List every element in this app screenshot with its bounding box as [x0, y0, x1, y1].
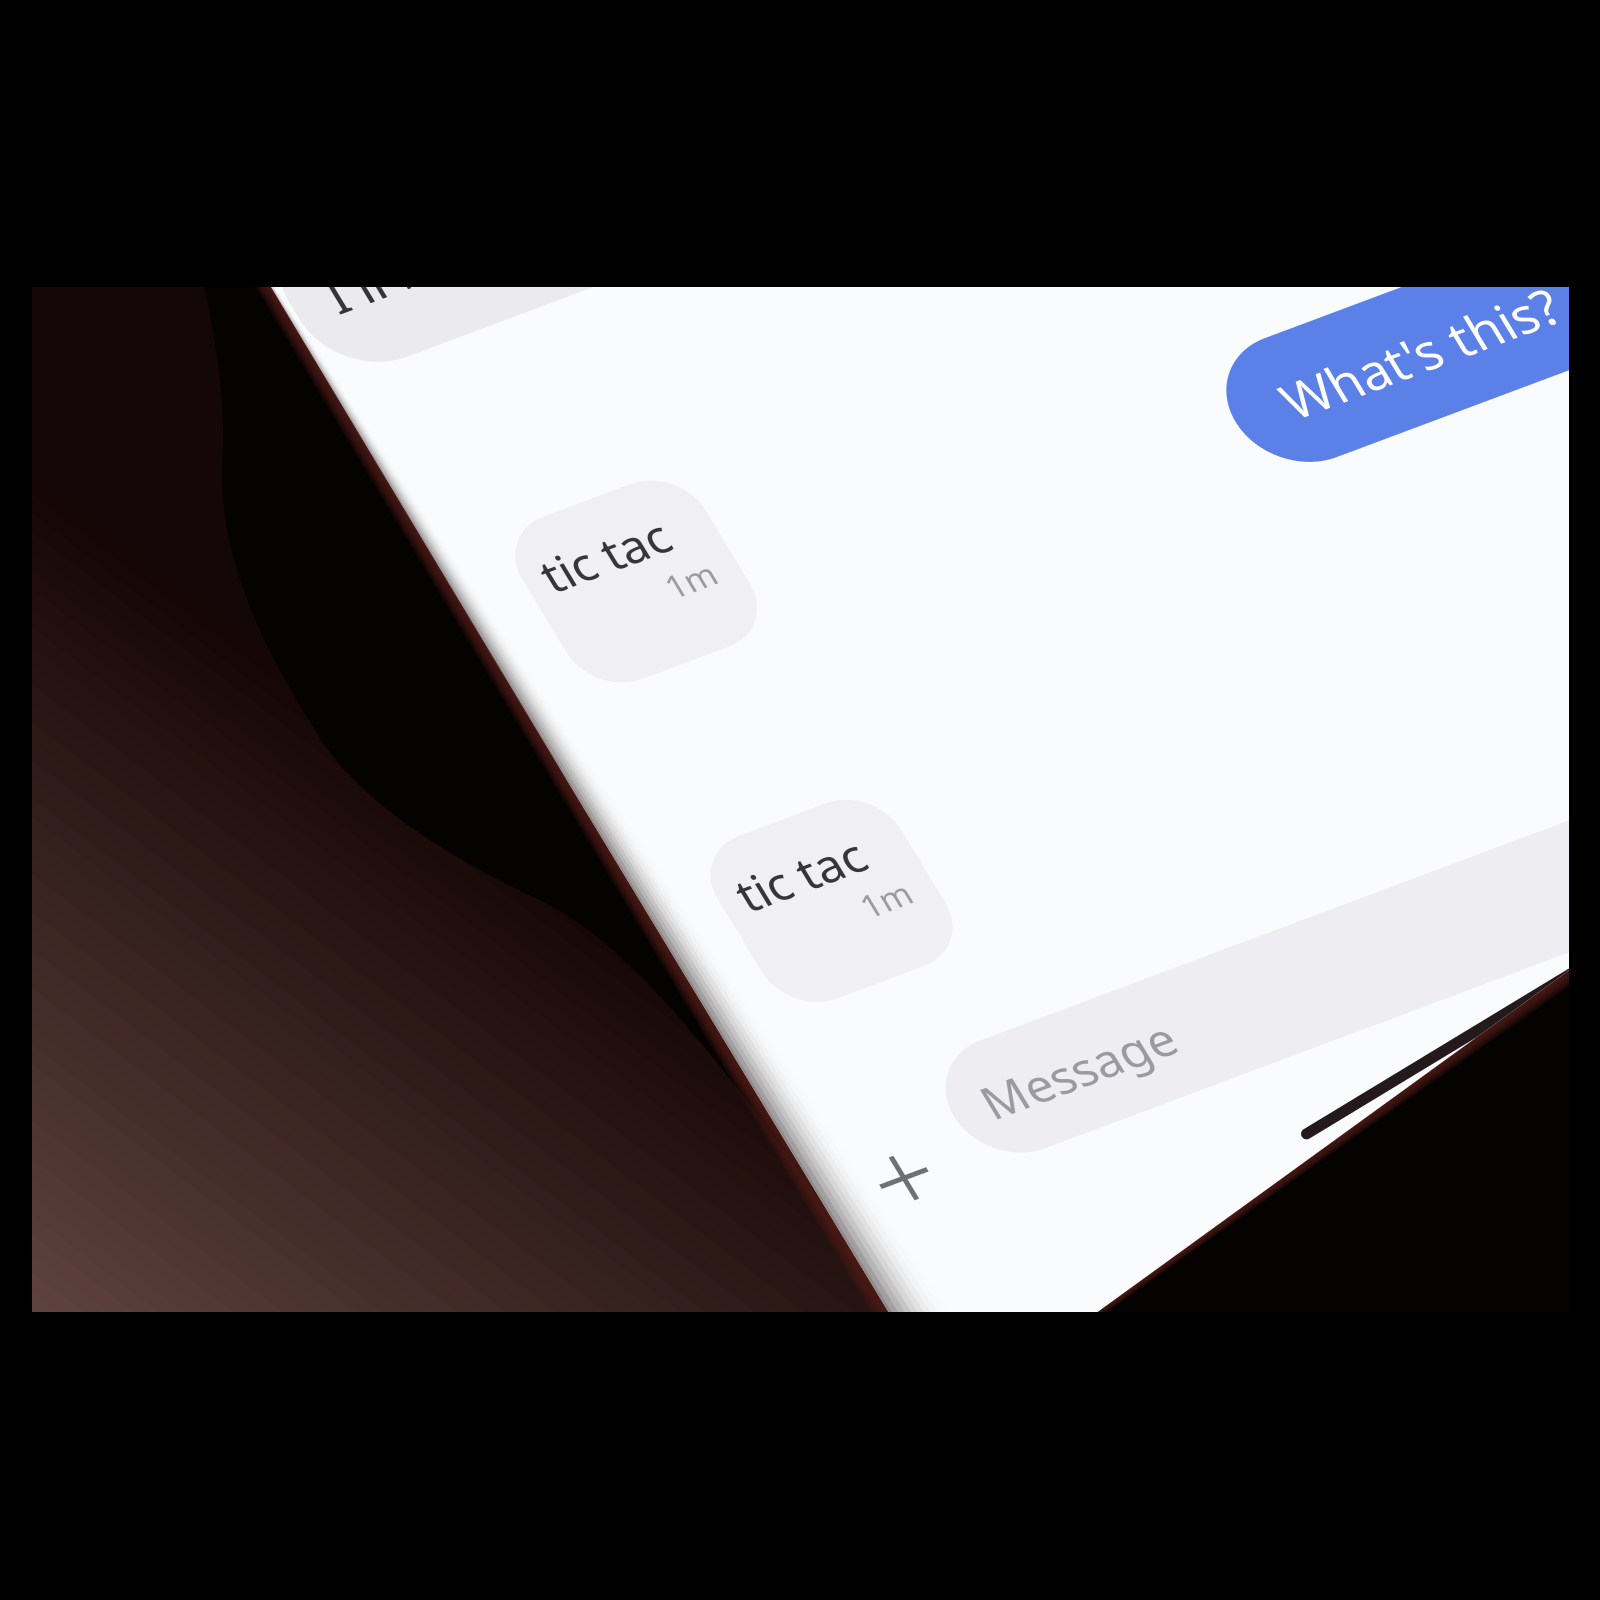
button[interactable]: tic tac — [101, 1092, 297, 1282]
button[interactable]: I'll b — [42, 349, 512, 517]
staticText: tic tac — [118, 745, 249, 809]
staticText: What's this? — [855, 840, 1145, 909]
button[interactable]: What's this? — [803, 805, 1207, 944]
staticText: tic tac — [120, 1119, 251, 1183]
button[interactable]: tic tac — [99, 718, 295, 908]
button[interactable]: Home — [32, 287, 1569, 1312]
